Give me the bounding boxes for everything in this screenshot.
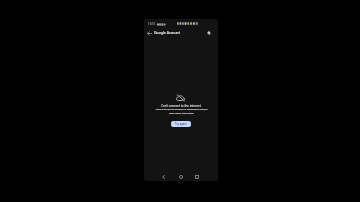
staticText: Try again bbox=[175, 122, 187, 126]
button[interactable]: Home bbox=[175, 171, 186, 181]
staticText: Google Account bbox=[154, 30, 181, 35]
button[interactable]: Recent apps bbox=[191, 171, 202, 181]
button[interactable]: Back bbox=[158, 171, 169, 181]
staticText: Can't connect to the internet bbox=[161, 104, 201, 108]
staticText: 10:51 bbox=[148, 22, 156, 26]
button[interactable]: Back bbox=[144, 28, 154, 38]
button[interactable]: Try again bbox=[171, 121, 191, 127]
button[interactable]: Account bbox=[207, 31, 211, 35]
staticText: Some info may be outdated or unavailable… bbox=[154, 108, 209, 115]
